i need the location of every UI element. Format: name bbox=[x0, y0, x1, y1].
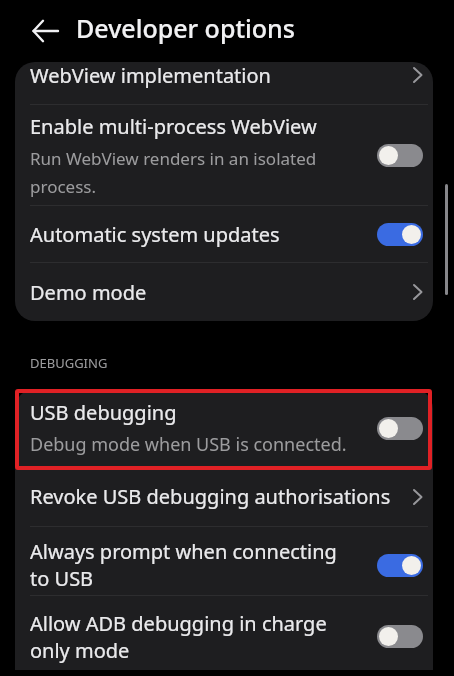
button[interactable] bbox=[377, 223, 423, 246]
staticText: USB debugging bbox=[30, 399, 177, 426]
staticText: Enable multi-process WebView bbox=[30, 113, 317, 140]
button[interactable] bbox=[377, 417, 423, 440]
button[interactable]: Demo mode bbox=[15, 263, 433, 321]
button[interactable]: Enable multi-process WebView bbox=[15, 105, 433, 205]
button[interactable] bbox=[377, 144, 423, 167]
staticText: Revoke USB debugging authorisations bbox=[30, 483, 413, 510]
button[interactable]: Automatic system updates bbox=[15, 206, 433, 262]
staticText: Debug mode when USB is connected. bbox=[30, 432, 347, 457]
button[interactable]: USB debugging bbox=[15, 389, 433, 467]
staticText: Allow ADB debugging in charge only mode bbox=[30, 610, 377, 664]
button[interactable] bbox=[377, 625, 423, 648]
staticText: WebView implementation bbox=[30, 62, 413, 89]
button[interactable] bbox=[377, 554, 423, 577]
button[interactable]: Always prompt when connecting to USB bbox=[15, 527, 433, 595]
button[interactable]: Allow ADB debugging in charge only mode bbox=[15, 596, 433, 671]
staticText: Demo mode bbox=[30, 279, 413, 306]
staticText: Automatic system updates bbox=[30, 221, 377, 248]
staticText: Developer options bbox=[76, 11, 295, 45]
staticText: DEBUGGING bbox=[30, 354, 108, 372]
button[interactable]: Revoke USB debugging authorisations bbox=[15, 467, 433, 526]
staticText: Run WebView renders in an isolated proce… bbox=[30, 147, 317, 198]
button[interactable]: WebView implementation bbox=[15, 62, 433, 104]
button[interactable] bbox=[28, 15, 62, 47]
staticText: Always prompt when connecting to USB bbox=[30, 538, 377, 592]
